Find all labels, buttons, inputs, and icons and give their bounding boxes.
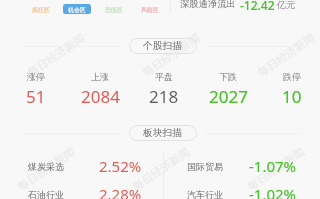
button[interactable]: 跌停 <box>260 71 320 108</box>
button[interactable]: 涨停 <box>4 71 68 108</box>
staticText: 2084 <box>81 85 120 108</box>
staticText: 每日经济新闻 <box>15 144 77 193</box>
staticText: -1.02% <box>249 184 297 199</box>
staticText: 51 <box>26 85 46 108</box>
staticText: 2.28% <box>99 184 142 199</box>
staticText: -1.07% <box>249 156 297 176</box>
staticText: 218 <box>149 85 179 108</box>
staticText: 涨停 <box>27 71 45 82</box>
staticText: 下跌 <box>219 71 237 82</box>
staticText: 每日经济新闻 <box>140 30 202 79</box>
staticText: 跌停 <box>283 71 301 82</box>
staticText: 每日经济新闻 <box>25 30 87 79</box>
staticText: 深股通净流出 <box>180 0 236 10</box>
button[interactable]: 上涨 <box>68 71 132 108</box>
staticText: 机会区 <box>68 6 86 13</box>
button[interactable]: 平盘 <box>132 71 196 108</box>
staticText: 国际贸易 <box>187 161 223 172</box>
staticText: 每日经济新闻 <box>245 144 307 193</box>
staticText: 风险区 <box>141 6 159 13</box>
staticText: 上涨 <box>91 71 109 82</box>
staticText: 2027 <box>209 85 248 108</box>
staticText: 汽车行业 <box>187 189 223 199</box>
staticText: 恐慌区 <box>105 6 123 13</box>
staticText: 平盘 <box>155 71 173 82</box>
staticText: 煤炭采选 <box>28 161 64 172</box>
button[interactable]: 个股扫描 <box>129 38 197 54</box>
staticText: 亿元 <box>277 0 295 10</box>
button[interactable]: 国际贸易 <box>160 152 320 180</box>
button[interactable]: 恐慌区 <box>100 4 128 14</box>
button[interactable]: 机会区 <box>63 4 91 14</box>
staticText: 个股扫描 <box>143 40 183 52</box>
staticText: 10 <box>282 85 302 108</box>
staticText: 2.52% <box>99 156 142 176</box>
button[interactable]: 石油行业 <box>0 180 160 199</box>
staticText: 每日经济新闻 <box>255 30 317 79</box>
staticText: -12.42 <box>240 0 275 11</box>
staticText: 板块扫描 <box>143 127 183 139</box>
button[interactable]: 下跌 <box>196 71 260 108</box>
staticText: 石油行业 <box>28 189 64 199</box>
button[interactable]: 疯狂区 <box>27 4 55 14</box>
button[interactable]: 风险区 <box>136 4 164 14</box>
button[interactable]: 汽车行业 <box>160 180 320 199</box>
button[interactable]: 煤炭采选 <box>0 152 160 180</box>
button[interactable]: 板块扫描 <box>129 125 197 141</box>
staticText: 疯狂区 <box>32 6 50 13</box>
staticText: 每日经济新闻 <box>130 144 192 193</box>
